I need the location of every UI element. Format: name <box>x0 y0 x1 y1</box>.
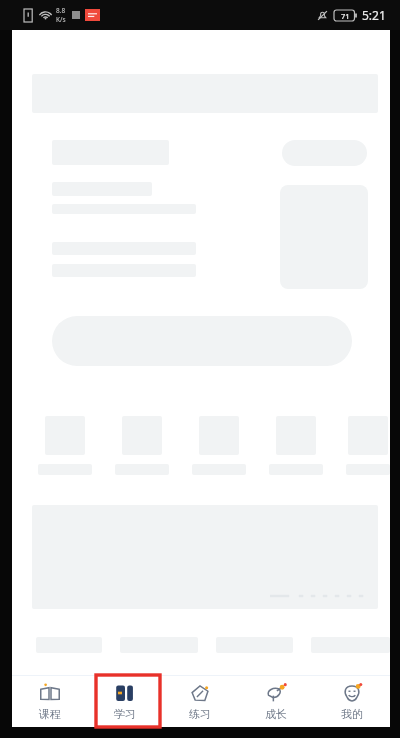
other: 课程 <box>39 682 61 704</box>
button[interactable]: 练习 <box>162 675 238 727</box>
other: 练习 <box>189 682 211 704</box>
button[interactable]: 课程 <box>12 675 87 727</box>
button[interactable]: 我的 <box>314 675 390 727</box>
staticText: 5:21 <box>362 7 386 23</box>
staticText: 学习 <box>114 707 136 721</box>
staticText: 71 <box>341 11 350 21</box>
staticText: 课程 <box>39 707 61 721</box>
staticText: 我的 <box>341 707 363 721</box>
other: 我的 <box>341 682 363 704</box>
staticText: 练习 <box>189 707 211 721</box>
other: 学习 <box>114 682 136 704</box>
staticText: K/s <box>56 15 66 24</box>
staticText: 8.8 <box>56 6 66 15</box>
button[interactable]: 学习 <box>87 675 162 727</box>
other: 成长 <box>265 682 287 704</box>
button[interactable]: 成长 <box>238 675 314 727</box>
staticText: 成长 <box>265 707 287 721</box>
